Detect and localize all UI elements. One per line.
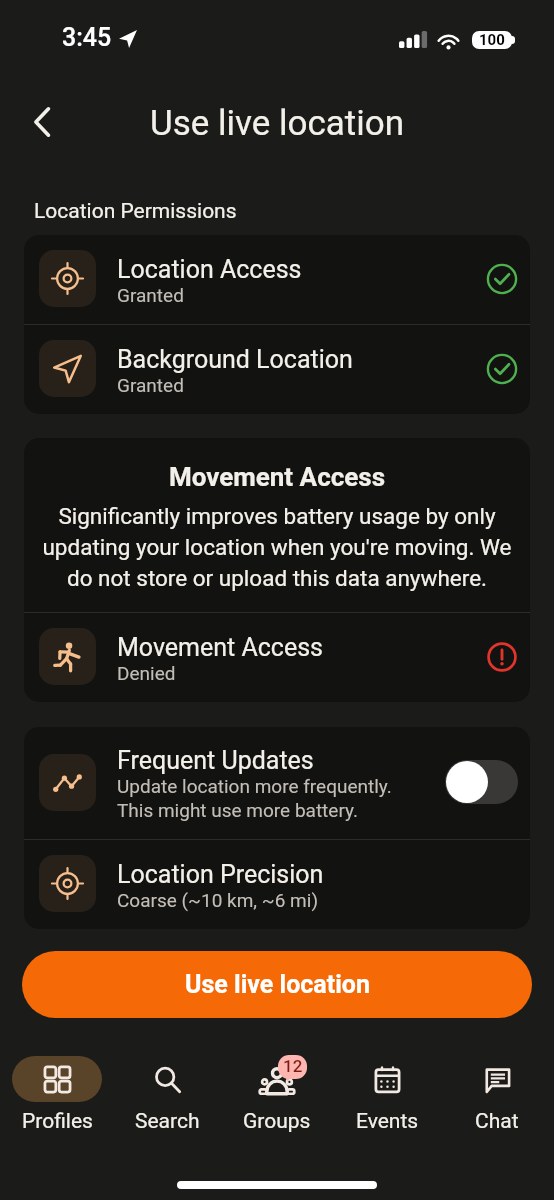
staticText: Significantly improves battery usage by … [38, 503, 516, 591]
staticText: 3:45 [62, 23, 112, 52]
button[interactable]: Back [18, 98, 66, 146]
staticText: Movement Access [117, 633, 324, 662]
staticText: Location Precision [117, 860, 324, 889]
button[interactable]: Profiles [4, 1040, 110, 1134]
other: Granted [486, 263, 518, 295]
staticText: Location Access [117, 255, 302, 284]
button[interactable]: Toggle frequent updates [445, 760, 518, 804]
staticText: Profiles [22, 1109, 93, 1134]
staticText: Location Permissions [34, 199, 237, 224]
button[interactable]: Location Access [24, 235, 530, 324]
staticText: Events [356, 1109, 419, 1134]
other: Granted [486, 353, 518, 385]
staticText: Coarse (~10 km, ~6 mi) [117, 889, 319, 911]
staticText: Search [135, 1109, 200, 1134]
button[interactable]: Background Location [24, 325, 530, 414]
staticText: Use live location [150, 103, 405, 144]
button[interactable]: Chat [444, 1040, 550, 1134]
button[interactable]: Movement Access [24, 613, 530, 702]
staticText: Granted [117, 284, 184, 306]
button[interactable]: Location Precision [24, 840, 530, 929]
staticText: Denied [117, 662, 176, 684]
staticText: Movement Access [38, 462, 516, 492]
button[interactable]: 12 [224, 1040, 330, 1134]
staticText: 100 [479, 31, 505, 49]
staticText: Background Location [117, 345, 353, 374]
button[interactable]: Search [114, 1040, 220, 1134]
staticText: Use live location [185, 970, 370, 999]
staticText: 12 [283, 1056, 303, 1076]
staticText: Frequent Updates [117, 746, 314, 775]
staticText: Groups [243, 1109, 311, 1134]
button[interactable]: Frequent Updates [24, 727, 530, 839]
button[interactable]: Use live location [22, 951, 532, 1018]
staticText: Update location more frequently. This mi… [117, 775, 392, 822]
staticText: Granted [117, 374, 184, 396]
button[interactable]: Events [334, 1040, 440, 1134]
staticText: Chat [475, 1109, 519, 1134]
other: Denied [486, 641, 518, 673]
